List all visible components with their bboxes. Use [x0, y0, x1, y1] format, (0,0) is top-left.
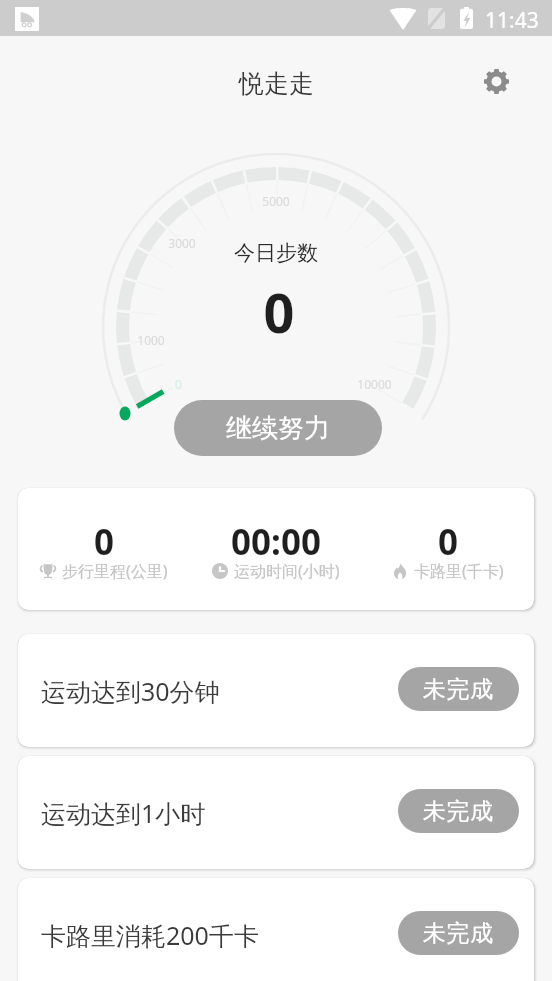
button[interactable]: 0: [18, 488, 534, 610]
staticText: 运动达到30分钟: [41, 674, 220, 708]
staticText: 0: [175, 376, 182, 392]
staticText: 今日步数: [0, 240, 552, 266]
staticText: 1000: [137, 332, 165, 348]
staticText: 3000: [168, 235, 196, 251]
staticText: 0: [3, 275, 552, 349]
staticText: 卡路里消耗200千卡: [41, 918, 259, 952]
staticText: 运动时间(小时): [234, 560, 340, 582]
button[interactable]: 卡路里消耗200千卡: [18, 878, 534, 981]
staticText: 未完成: [423, 919, 494, 948]
button[interactable]: 未完成: [398, 667, 519, 711]
staticText: 悦走走: [239, 68, 314, 99]
staticText: 步行里程(公里): [62, 560, 168, 582]
button[interactable]: 继续努力: [174, 400, 382, 456]
button[interactable]: 运动达到1小时: [18, 756, 534, 869]
button[interactable]: 未完成: [398, 789, 519, 833]
staticText: 未完成: [423, 797, 494, 826]
button[interactable]: 未完成: [398, 911, 519, 955]
staticText: 未完成: [423, 675, 494, 704]
staticText: 0: [94, 518, 115, 566]
staticText: 运动达到1小时: [41, 796, 206, 830]
staticText: 5000: [262, 193, 290, 209]
button[interactable]: Settings: [483, 68, 510, 95]
staticText: 卡路里(千卡): [414, 560, 504, 582]
staticText: 继续努力: [226, 412, 330, 445]
button[interactable]: 运动达到30分钟: [18, 634, 534, 747]
staticText: 10000: [357, 376, 392, 392]
staticText: 11:43: [485, 6, 539, 35]
staticText: 0: [438, 518, 459, 566]
staticText: 00:00: [231, 518, 321, 566]
